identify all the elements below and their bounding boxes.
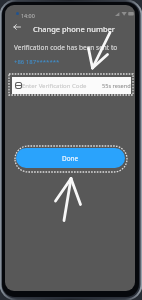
staticText: +86 187******* <box>14 58 60 66</box>
staticText: Change phone number <box>33 24 115 34</box>
staticText: Enter Verification Code <box>22 82 87 90</box>
staticText: 55s resend <box>102 82 131 90</box>
button[interactable]: Back <box>9 21 25 33</box>
staticText: 14:00 <box>21 12 35 19</box>
staticText: Verification code has been sent to <box>14 43 118 52</box>
staticText: Done <box>62 154 79 163</box>
button[interactable]: Enter Verification Code <box>12 77 131 94</box>
button[interactable]: Done <box>16 148 125 168</box>
